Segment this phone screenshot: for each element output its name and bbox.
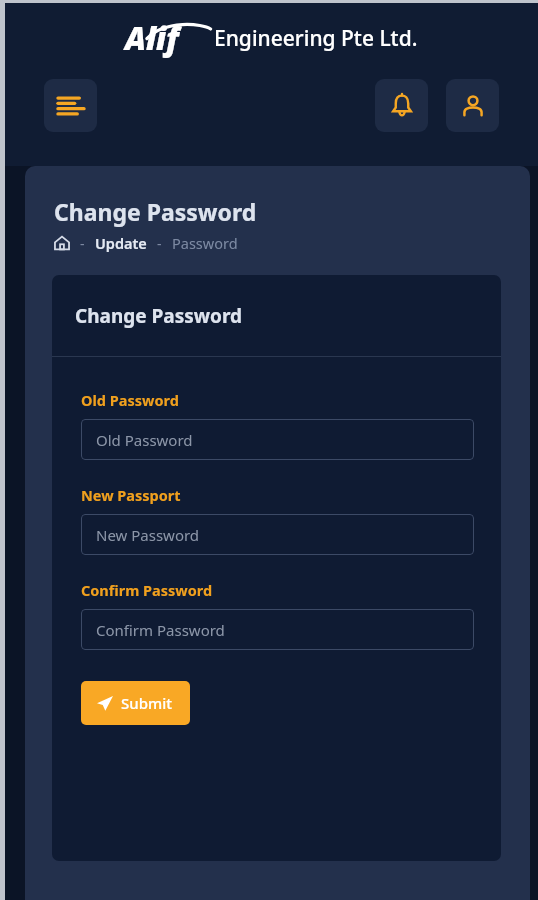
staticText: Submit: [121, 693, 172, 713]
button[interactable]: Menu: [44, 79, 97, 132]
button[interactable]: Update: [95, 233, 147, 253]
staticText: New Passport: [81, 485, 181, 505]
staticText: -: [157, 234, 162, 253]
staticText: Engineering Pte Ltd.: [214, 24, 418, 53]
staticText: New Password: [96, 525, 200, 545]
staticText: Password: [172, 233, 238, 253]
staticText: Change Password: [54, 196, 257, 227]
staticText: Confirm Password: [96, 620, 225, 640]
staticText: Update: [95, 233, 147, 253]
staticText: Change Password: [75, 303, 243, 329]
button[interactable]: Confirm Password: [81, 609, 474, 650]
staticText: Alif: [125, 17, 179, 59]
staticText: Confirm Password: [81, 580, 213, 600]
button[interactable]: Notifications: [375, 79, 428, 132]
staticText: Old Password: [81, 390, 179, 410]
staticText: -: [80, 234, 85, 253]
button[interactable]: New Password: [81, 514, 474, 555]
button[interactable]: Submit: [81, 681, 190, 725]
button[interactable]: Old Password: [81, 419, 474, 460]
button[interactable]: Profile: [446, 79, 499, 132]
staticText: Old Password: [96, 430, 193, 450]
